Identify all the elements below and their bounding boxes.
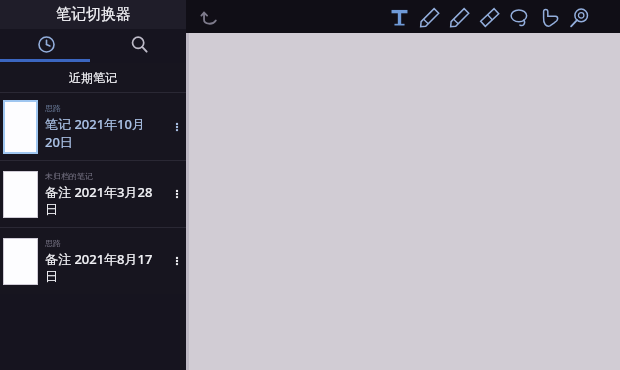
button[interactable]: Search — [93, 29, 186, 59]
button[interactable]: Highlighter — [444, 2, 474, 32]
button[interactable]: More options — [168, 228, 186, 294]
button[interactable]: 思路 — [0, 93, 186, 160]
button[interactable]: Text — [384, 2, 414, 32]
staticText: 20日 — [45, 133, 73, 151]
staticText: 笔记切换器 — [56, 5, 131, 24]
button[interactable]: More options — [168, 161, 186, 227]
button[interactable]: Undo — [196, 3, 224, 31]
staticText: 思路 — [45, 103, 61, 113]
button[interactable]: 未归档的笔记 — [0, 161, 186, 227]
staticText: 备注 2021年3月28 — [45, 183, 153, 201]
staticText: 备注 2021年8月17 — [45, 250, 153, 268]
button[interactable]: Hand — [534, 2, 564, 32]
staticText: 未归档的笔记 — [45, 171, 93, 181]
staticText: 笔记 2021年10月 — [45, 115, 145, 133]
staticText: 思路 — [45, 238, 61, 248]
staticText: 近期笔记 — [69, 70, 117, 85]
button[interactable]: Recent — [0, 29, 93, 59]
button[interactable]: Pen — [414, 2, 444, 32]
staticText: 日 — [45, 201, 58, 217]
staticText: 日 — [45, 268, 58, 284]
button[interactable]: Eraser — [474, 2, 504, 32]
button[interactable]: 思路 — [0, 228, 186, 294]
button[interactable]: Lasso — [504, 2, 534, 32]
button[interactable]: More options — [168, 93, 186, 160]
button[interactable]: Zoom — [564, 2, 594, 32]
